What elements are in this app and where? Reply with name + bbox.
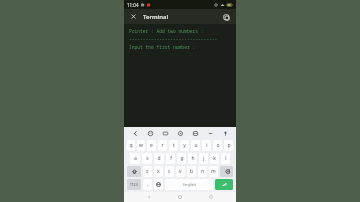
button[interactable]: Switch language xyxy=(154,179,163,190)
button[interactable]: Shift xyxy=(127,166,141,177)
staticText: c xyxy=(168,168,171,175)
button[interactable]: Translate xyxy=(190,128,200,138)
staticText: k xyxy=(213,155,216,162)
staticText: u xyxy=(194,142,198,149)
staticText: w xyxy=(139,142,143,149)
button[interactable]: y xyxy=(180,140,189,151)
button[interactable]: Recents xyxy=(205,192,217,202)
button[interactable]: m xyxy=(209,166,218,177)
button[interactable]: w xyxy=(137,140,145,151)
staticText: -------------------------------- xyxy=(129,36,218,42)
staticText: 11:04 xyxy=(127,2,139,8)
button[interactable]: GIF xyxy=(160,128,170,138)
button[interactable]: c xyxy=(165,166,174,177)
button[interactable]: u xyxy=(191,140,200,151)
staticText: Terminal xyxy=(143,13,169,21)
button[interactable]: v xyxy=(176,166,185,177)
staticText: a xyxy=(134,155,137,162)
staticText: q xyxy=(129,142,133,149)
staticText: z xyxy=(146,168,149,175)
staticText: English xyxy=(183,182,196,187)
button[interactable]: Enter xyxy=(215,179,233,190)
staticText: s xyxy=(146,155,149,162)
staticText: n xyxy=(201,168,205,175)
button[interactable]: j xyxy=(199,153,208,164)
button[interactable]: l xyxy=(221,153,230,164)
button[interactable]: n xyxy=(198,166,207,177)
button[interactable]: Close xyxy=(128,11,139,22)
staticText: h xyxy=(191,155,195,162)
staticText: x xyxy=(157,168,160,175)
button[interactable]: i xyxy=(202,140,211,151)
staticText: f xyxy=(170,155,172,162)
staticText: o xyxy=(216,142,220,149)
staticText: , xyxy=(147,181,149,188)
button[interactable]: r xyxy=(158,140,167,151)
button[interactable]: ?123 xyxy=(127,179,141,190)
button[interactable]: Voice input xyxy=(220,128,230,138)
button[interactable]: f xyxy=(166,153,175,164)
button[interactable]: t xyxy=(169,140,178,151)
button[interactable]: English xyxy=(165,179,213,190)
button[interactable]: Back xyxy=(143,192,155,202)
staticText: t xyxy=(173,142,175,149)
staticText: d xyxy=(157,155,161,162)
staticText: Input the first number : xyxy=(129,44,196,50)
staticText: e xyxy=(150,142,153,149)
button[interactable]: Comma xyxy=(143,179,152,190)
button[interactable]: Stickers xyxy=(145,128,155,138)
button[interactable]: z xyxy=(143,166,152,177)
button[interactable]: b xyxy=(187,166,196,177)
staticText: r xyxy=(161,142,164,149)
button[interactable]: New session xyxy=(220,11,232,23)
button[interactable]: o xyxy=(213,140,222,151)
staticText: p xyxy=(227,142,231,149)
button[interactable]: g xyxy=(177,153,186,164)
button[interactable]: Settings xyxy=(175,128,185,138)
button[interactable]: x xyxy=(154,166,163,177)
button[interactable]: Back xyxy=(130,128,140,138)
staticText: v xyxy=(179,168,182,175)
staticText: l xyxy=(225,155,227,162)
button[interactable]: More options xyxy=(205,128,215,138)
staticText: Pointer : Add two numbers : xyxy=(129,28,204,34)
staticText: g xyxy=(180,155,184,162)
button[interactable]: h xyxy=(188,153,197,164)
staticText: m xyxy=(211,168,216,175)
button[interactable]: s xyxy=(142,153,152,164)
button[interactable]: q xyxy=(127,140,135,151)
staticText: b xyxy=(190,168,194,175)
button[interactable]: Home xyxy=(174,192,186,202)
staticText: j xyxy=(203,155,205,162)
button[interactable]: p xyxy=(224,140,233,151)
button[interactable]: k xyxy=(210,153,219,164)
button[interactable]: e xyxy=(147,140,156,151)
button[interactable]: Backspace xyxy=(220,166,233,177)
staticText: ?123 xyxy=(130,182,138,187)
staticText: i xyxy=(206,142,208,149)
button[interactable]: a xyxy=(130,153,140,164)
staticText: y xyxy=(183,142,186,149)
button[interactable]: d xyxy=(154,153,164,164)
